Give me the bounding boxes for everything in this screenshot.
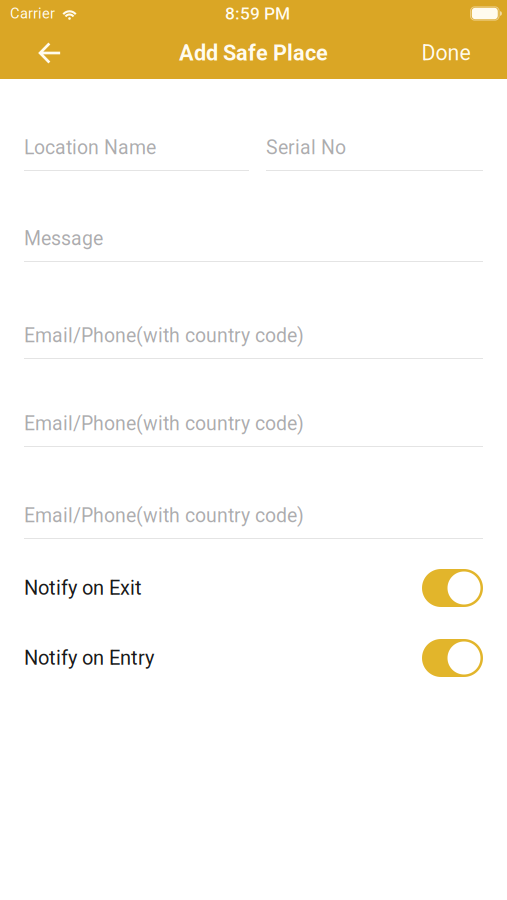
- staticText: Email/Phone(with country code): [24, 324, 304, 347]
- button[interactable]: Location Name: [24, 125, 249, 171]
- staticText: Carrier: [10, 5, 55, 22]
- staticText: Notify on Entry: [24, 646, 154, 670]
- button[interactable]: Done: [409, 27, 483, 79]
- staticText: Location Name: [24, 136, 156, 159]
- button[interactable]: Email/Phone(with country code): [24, 313, 483, 359]
- staticText: Email/Phone(with country code): [24, 412, 304, 435]
- staticText: Notify on Exit: [24, 576, 142, 600]
- button[interactable]: Serial No: [266, 125, 483, 171]
- staticText: Message: [24, 227, 103, 250]
- staticText: Email/Phone(with country code): [24, 504, 304, 527]
- staticText: Serial No: [266, 136, 346, 159]
- button[interactable]: Email/Phone(with country code): [24, 401, 483, 447]
- button[interactable]: Notify on Entry: [24, 639, 483, 677]
- button[interactable]: Message: [24, 216, 483, 262]
- staticText: Done: [421, 40, 470, 65]
- staticText: 8:59 PM: [225, 3, 290, 24]
- staticText: Add Safe Place: [179, 40, 328, 66]
- button[interactable]: Notify on Exit: [24, 569, 483, 607]
- button[interactable]: Back: [24, 27, 76, 79]
- button[interactable]: Email/Phone(with country code): [24, 493, 483, 539]
